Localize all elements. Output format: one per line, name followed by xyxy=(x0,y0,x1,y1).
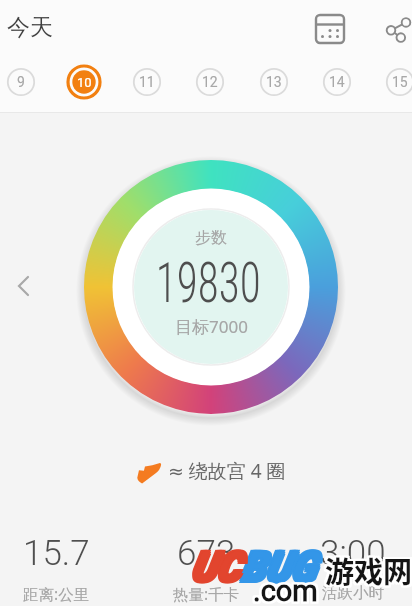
staticText: 步数 xyxy=(195,228,227,248)
staticText: UCBUG xyxy=(193,543,318,591)
button[interactable] xyxy=(374,8,412,48)
staticText: 距离:公里 xyxy=(23,583,90,604)
staticText: 游戏网 xyxy=(327,549,412,591)
staticText: 15 xyxy=(392,74,408,90)
staticText: 游戏网 xyxy=(323,547,411,589)
staticText: 3:00 xyxy=(320,533,386,574)
staticText: UCBUG xyxy=(191,543,316,591)
staticText: 12 xyxy=(202,74,218,90)
staticText: 热量:千卡 xyxy=(173,583,240,604)
staticText: .com xyxy=(253,572,318,606)
button[interactable]: 10 xyxy=(63,61,105,103)
staticText: 今天 xyxy=(7,13,53,42)
staticText: 游戏网 xyxy=(323,551,411,593)
staticText: 游戏网 xyxy=(323,549,411,591)
staticText: .com xyxy=(251,576,316,606)
staticText: .com xyxy=(251,574,316,606)
staticText: .com xyxy=(255,572,320,606)
staticText: UCBUG xyxy=(189,541,314,589)
button[interactable]: 12 xyxy=(189,61,231,103)
staticText: 9 xyxy=(17,74,25,90)
staticText: 11 xyxy=(139,74,155,90)
staticText: 14 xyxy=(329,74,345,90)
staticText: .com xyxy=(251,572,316,606)
staticText: 15.7 xyxy=(23,533,90,574)
button[interactable]: 14 xyxy=(316,61,358,103)
staticText: UCBUG xyxy=(193,545,318,593)
button[interactable]: 11 xyxy=(126,61,168,103)
staticText: 目标7000 xyxy=(175,315,248,338)
staticText: UCBUG xyxy=(191,545,316,593)
button[interactable] xyxy=(306,6,352,52)
staticText: UCBUG xyxy=(189,543,314,591)
staticText: 13 xyxy=(266,74,282,90)
staticText: 游戏网 xyxy=(327,547,412,589)
staticText: 游戏网 xyxy=(325,547,412,589)
button[interactable] xyxy=(8,270,40,302)
button[interactable]: 9 xyxy=(0,61,42,103)
button[interactable]: ≈ 绕故宫 4 圈 xyxy=(134,450,304,490)
staticText: UCBUG xyxy=(189,545,314,593)
staticText: 游戏网 xyxy=(325,551,412,593)
staticText: 活跃小时 xyxy=(322,583,384,603)
button[interactable]: 15 xyxy=(379,61,412,103)
staticText: 游戏网 xyxy=(325,549,412,591)
staticText: UCBUG xyxy=(191,541,316,589)
staticText: .com xyxy=(253,574,318,606)
staticText: ≈ 绕故宫 4 圈 xyxy=(168,458,286,484)
staticText: 19830 xyxy=(156,250,261,316)
staticText: .com xyxy=(253,576,318,606)
staticText: 10 xyxy=(77,75,92,90)
staticText: 游戏网 xyxy=(327,551,412,593)
staticText: 673 xyxy=(177,533,236,574)
staticText: .com xyxy=(255,576,320,606)
button[interactable]: 13 xyxy=(253,61,295,103)
staticText: .com xyxy=(255,574,320,606)
staticText: UCBUG xyxy=(193,541,318,589)
